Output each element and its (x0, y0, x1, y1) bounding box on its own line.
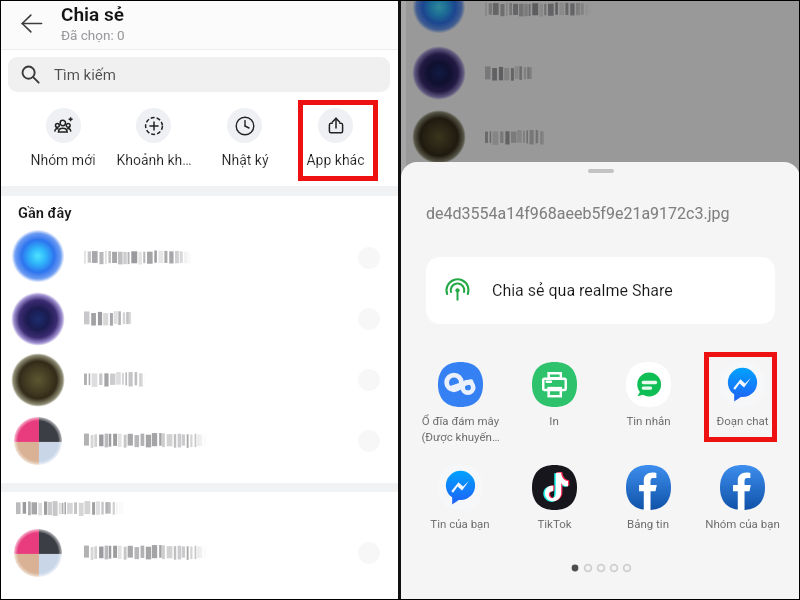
button[interactable]: TikTok (507, 465, 601, 530)
button[interactable]: Nhóm mới (18, 108, 108, 168)
staticText: Tìm kiếm (54, 66, 116, 84)
button[interactable]: Ổ đĩa đám mây (Được khuyến… (413, 362, 507, 443)
staticText: Khoảnh kh… (116, 152, 192, 168)
staticText: TikTok (537, 517, 572, 530)
button[interactable]: Đoạn chat (695, 362, 789, 427)
button[interactable]: In (507, 362, 601, 427)
staticText: Gần đây (18, 205, 72, 222)
staticText: Đã chọn: 0 (61, 27, 125, 43)
staticText: Đoạn chat (716, 414, 769, 427)
button[interactable] (0, 522, 398, 583)
button[interactable] (0, 227, 398, 288)
staticText: Nhóm của bạn (705, 517, 780, 530)
button[interactable]: Back (21, 13, 42, 34)
button[interactable]: Nhật ký (199, 108, 290, 168)
button[interactable] (0, 410, 398, 471)
button[interactable]: Nhóm của bạn (695, 465, 789, 530)
staticText: Bảng tin (627, 517, 669, 530)
button[interactable]: Tìm kiếm (8, 57, 390, 92)
staticText: Nhật ký (221, 152, 269, 168)
button[interactable]: Tin của bạn (413, 465, 507, 530)
staticText: Ổ đĩa đám mây (Được khuyến… (421, 414, 500, 443)
button[interactable] (0, 349, 398, 410)
staticText: de4d3554a14f968aeeb5f9e21a9172c3.jpg (426, 204, 730, 223)
button[interactable]: Tin nhắn (601, 362, 695, 427)
staticText: App khác (306, 152, 365, 168)
staticText: Tin của bạn (430, 517, 490, 530)
button[interactable]: Chia sẻ qua realme Share (426, 257, 775, 324)
staticText: Tin nhắn (626, 414, 671, 427)
staticText: Chia sẻ (61, 3, 125, 25)
button[interactable]: Bảng tin (601, 465, 695, 530)
staticText: Nhóm mới (30, 152, 96, 168)
button[interactable]: Khoảnh kh… (108, 108, 199, 168)
button[interactable]: App khác (290, 108, 381, 168)
staticText: In (549, 414, 559, 427)
staticText: Chia sẻ qua realme Share (492, 281, 673, 300)
button[interactable] (0, 288, 398, 349)
